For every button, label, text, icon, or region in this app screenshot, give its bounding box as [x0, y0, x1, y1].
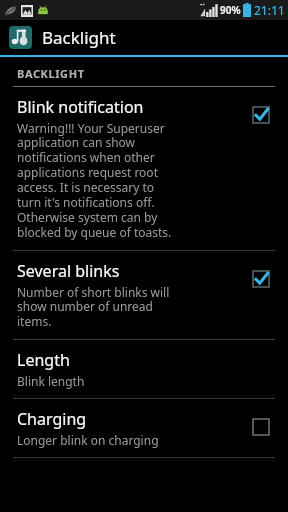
button[interactable]: Backlight: [0, 20, 288, 55]
button[interactable]: Several blinks: [0, 251, 288, 339]
button[interactable]: Charging: [0, 399, 288, 457]
button[interactable]: Several blinks, checked: [244, 260, 278, 298]
staticText: BACKLIGHT: [17, 66, 85, 81]
staticText: Charging: [17, 408, 87, 430]
staticText: Blink length: [17, 373, 226, 389]
staticText: Warning!!! Your Superuser application ca…: [17, 120, 180, 241]
button[interactable]: Charging, not checked: [244, 408, 278, 446]
staticText: 21:11: [254, 2, 285, 18]
staticText: Length: [17, 349, 70, 371]
staticText: Longer blink on charging: [17, 432, 180, 448]
button[interactable]: Blink notification, checked: [244, 96, 278, 134]
staticText: Number of short blinks will show number …: [17, 284, 176, 330]
staticText: Blink notification: [17, 96, 144, 118]
button[interactable]: Length: [0, 340, 288, 398]
staticText: Backlight: [42, 26, 116, 49]
button[interactable]: Blink notification: [0, 87, 288, 250]
staticText: Several blinks: [17, 260, 120, 282]
staticText: 90%: [220, 3, 241, 17]
